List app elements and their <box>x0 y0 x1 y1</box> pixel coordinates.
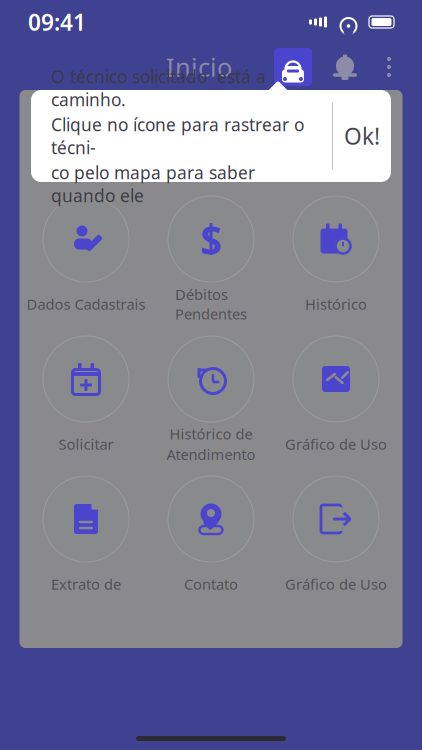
staticText: co pelo mapa para saber quando ele <box>51 161 255 207</box>
button[interactable]: Contato <box>148 476 273 598</box>
staticText: Atendimento <box>166 444 255 464</box>
button[interactable]: Rastrear técnico <box>274 48 312 86</box>
staticText: Histórico de <box>169 424 252 443</box>
staticText: Gráfico de Uso <box>285 574 387 594</box>
button[interactable]: Extrato de <box>23 476 148 598</box>
staticText: Histórico <box>305 294 367 314</box>
staticText: Contato <box>184 574 238 594</box>
staticText: 09:41 <box>28 7 86 37</box>
button[interactable]: Notificações <box>326 48 364 86</box>
staticText: Débitos Pendentes <box>175 284 247 323</box>
staticText: Extrato de <box>51 574 121 594</box>
staticText: Clique no ícone para rastrear o técni- <box>51 113 304 159</box>
staticText: Gráfico de Uso <box>285 434 387 454</box>
button[interactable]: Dados Cadastrais <box>23 196 148 318</box>
staticText: Inicio <box>166 50 232 84</box>
button[interactable]: Solicitar <box>23 336 148 458</box>
button[interactable]: Histórico de <box>148 336 273 458</box>
staticText: O técnico solicitado está a caminho. <box>51 65 266 111</box>
staticText: S <box>200 212 222 265</box>
button[interactable]: S <box>148 196 273 318</box>
button[interactable]: Gráfico de Uso <box>273 336 398 458</box>
staticText: Ok! <box>344 121 380 151</box>
button[interactable]: Gráfico de Uso <box>273 476 398 598</box>
button[interactable]: Mais opções <box>374 48 404 86</box>
button[interactable]: Ok! <box>333 90 391 182</box>
staticText: Dados Cadastrais <box>26 294 145 314</box>
button[interactable]: Histórico <box>273 196 398 318</box>
staticText: Solicitar <box>58 434 113 454</box>
